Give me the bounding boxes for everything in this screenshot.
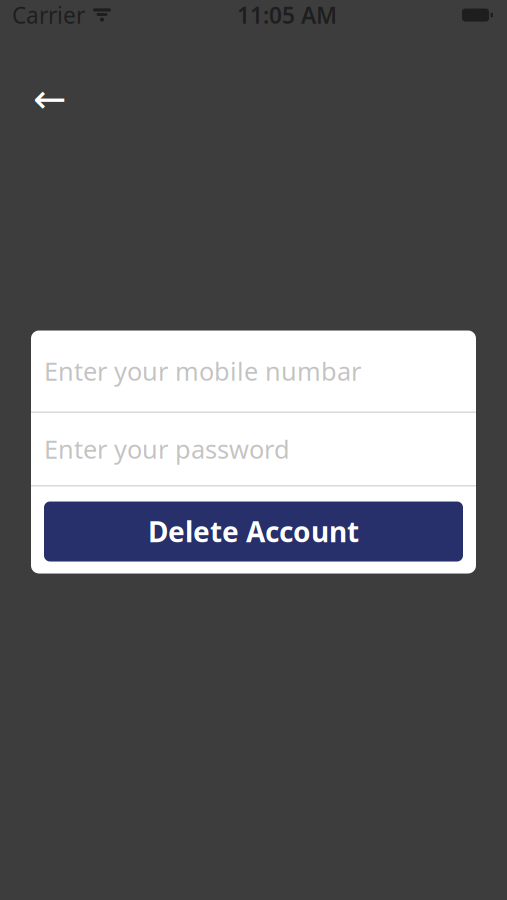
button[interactable]: Enter your mobile numbar [31,330,476,411]
staticText: Delete Account [148,513,359,550]
staticText: Enter your password [44,432,290,466]
staticText: ← [33,76,67,122]
staticText: Enter your mobile numbar [44,354,361,388]
button[interactable]: Back [25,74,75,124]
button[interactable]: Delete Account [44,501,463,561]
button[interactable]: Enter your password [31,413,476,485]
staticText: Carrier [12,0,85,30]
staticText: 11:05 AM [237,0,337,30]
